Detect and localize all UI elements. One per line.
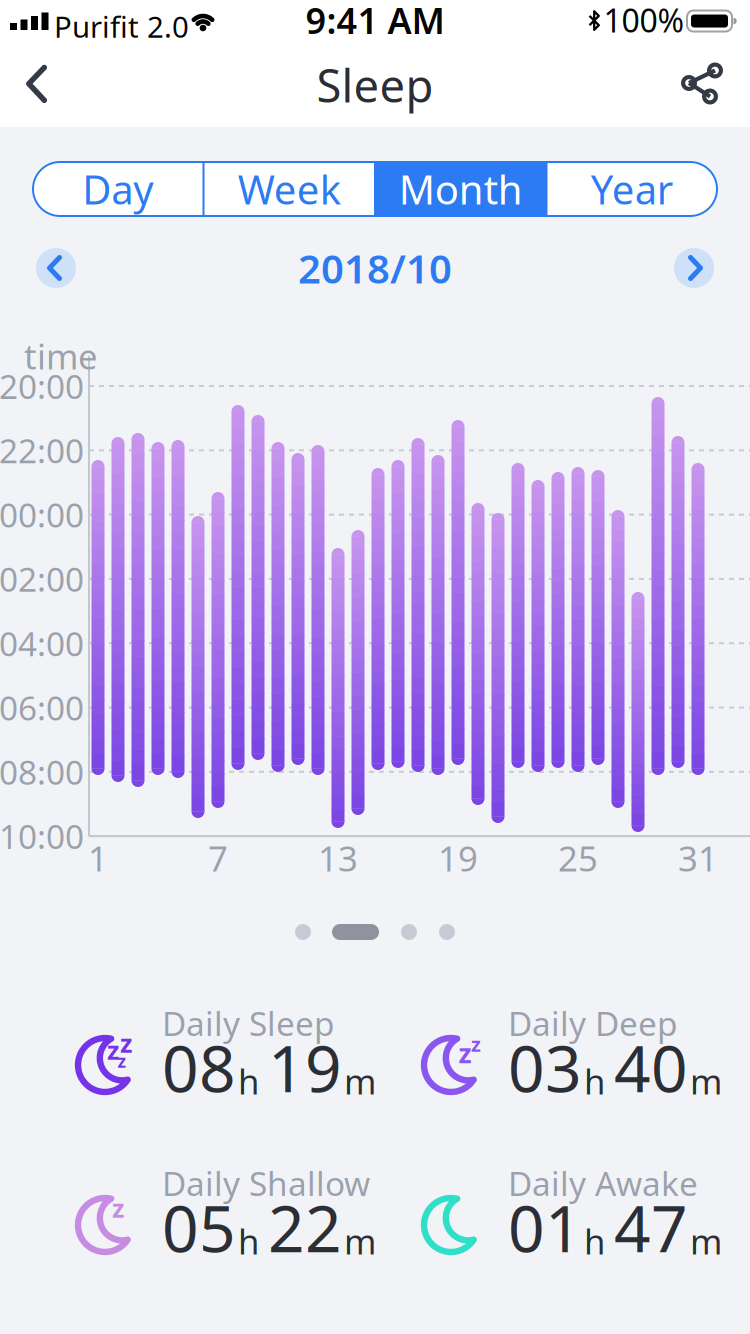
staticText: Day	[82, 162, 153, 215]
staticText: 19	[438, 835, 478, 881]
staticText: 02:00	[0, 557, 84, 601]
staticText: 100%	[603, 0, 684, 41]
staticText: z	[112, 1191, 124, 1225]
button[interactable]	[668, 54, 728, 114]
staticText: time	[24, 333, 98, 379]
staticText: h	[238, 1058, 259, 1104]
staticText: h	[584, 1218, 605, 1264]
staticText: 9:41 AM	[305, 0, 444, 44]
staticText: 31	[678, 835, 718, 881]
button[interactable]: Day	[32, 161, 203, 217]
staticText: Daily Sleep	[162, 1001, 335, 1045]
button[interactable]: Week	[203, 161, 375, 217]
staticText: 00:00	[0, 492, 84, 537]
staticText: z	[120, 1026, 132, 1060]
staticText: m	[690, 1218, 722, 1264]
staticText: 06:00	[0, 685, 84, 730]
staticText: 22:00	[0, 428, 84, 472]
staticText: 08:00	[0, 750, 84, 794]
staticText: 01	[508, 1185, 582, 1270]
staticText: 19	[268, 1025, 342, 1110]
staticText: 2018/10	[298, 241, 452, 294]
staticText: 20:00	[0, 364, 84, 408]
staticText: Month	[399, 162, 523, 215]
staticText: m	[690, 1058, 722, 1104]
staticText: z	[458, 1035, 471, 1071]
staticText: h	[584, 1058, 605, 1104]
staticText: Purifit 2.0	[54, 7, 189, 46]
button[interactable]	[36, 248, 76, 288]
button[interactable]	[10, 54, 70, 114]
staticText: Year	[591, 162, 674, 215]
button[interactable]	[674, 248, 714, 288]
staticText: 47	[614, 1185, 688, 1270]
staticText: z	[107, 1033, 119, 1067]
staticText: 05	[162, 1185, 236, 1270]
staticText: 03	[508, 1025, 582, 1110]
staticText: 1	[88, 835, 108, 881]
button[interactable]: Year	[546, 161, 718, 217]
staticText: 25	[558, 835, 598, 881]
staticText: Daily Deep	[508, 1001, 678, 1045]
button[interactable]: Month	[375, 161, 546, 217]
staticText: 13	[318, 835, 358, 881]
staticText: m	[344, 1058, 376, 1104]
staticText: 08	[162, 1025, 236, 1110]
staticText: h	[238, 1218, 259, 1264]
staticText: 10:00	[0, 814, 84, 858]
staticText: 40	[614, 1025, 688, 1110]
staticText: Week	[238, 162, 341, 215]
staticText: Sleep	[316, 55, 433, 115]
staticText: Daily Awake	[508, 1161, 698, 1205]
staticText: 22	[268, 1185, 342, 1270]
staticText: m	[344, 1218, 376, 1264]
staticText: Daily Shallow	[162, 1161, 370, 1205]
staticText: z	[471, 1031, 481, 1057]
staticText: 7	[208, 835, 228, 881]
staticText: 04:00	[0, 621, 84, 665]
staticText: z	[117, 1049, 126, 1072]
